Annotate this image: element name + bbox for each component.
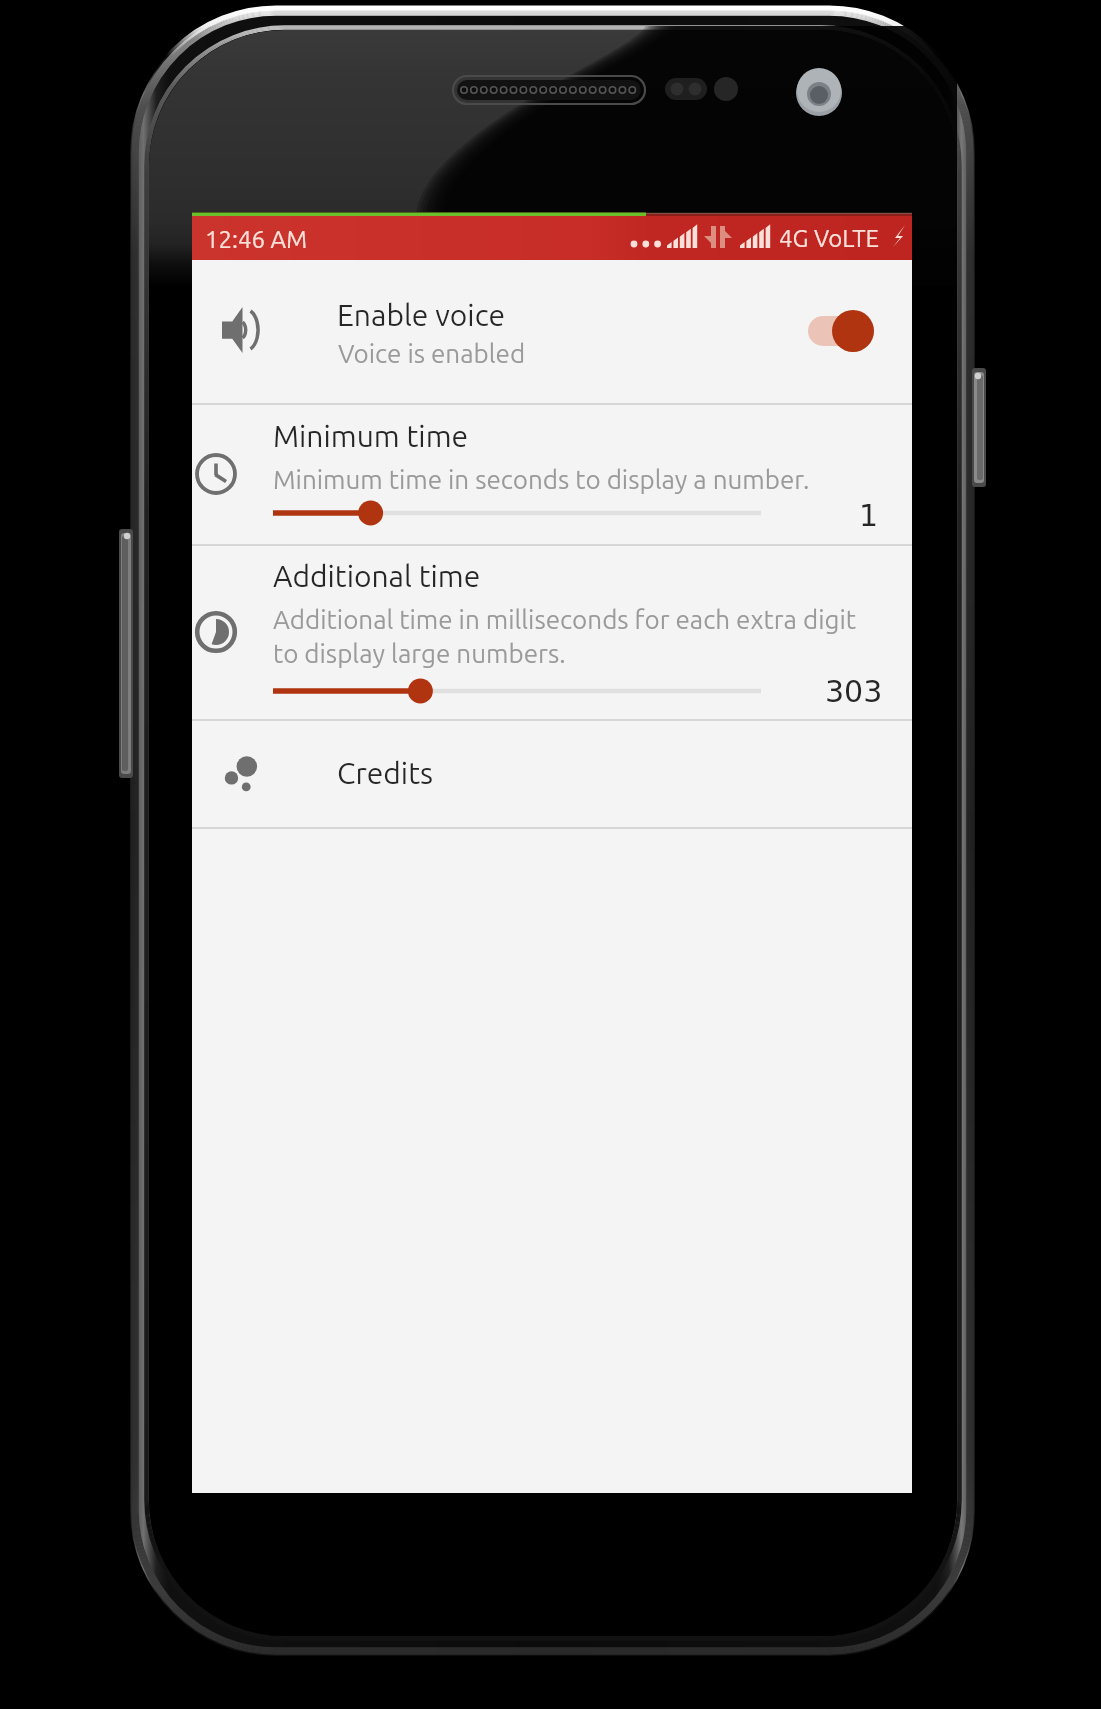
button[interactable]: Enable voice toggle	[800, 304, 886, 358]
staticText: 303	[825, 674, 883, 709]
button[interactable]: Volume	[192, 259, 912, 403]
staticText: Minimum time in seconds to display a num…	[273, 465, 810, 494]
other: Volume	[222, 307, 263, 353]
button[interactable]: Additional time	[192, 546, 912, 719]
staticText: Credits	[337, 756, 433, 790]
button[interactable]: Minimum time	[192, 405, 912, 544]
staticText: 4G VoLTE	[779, 225, 880, 252]
staticText: 1	[859, 498, 879, 533]
staticText: Additional time in milliseconds for each…	[273, 605, 856, 668]
staticText: Minimum time	[273, 419, 469, 453]
staticText: Additional time	[273, 559, 481, 593]
staticText: Voice is enabled	[338, 339, 526, 368]
staticText: Enable voice	[337, 298, 506, 332]
button[interactable]: Credits	[192, 721, 912, 827]
staticText: 12:46 AM	[205, 226, 307, 253]
